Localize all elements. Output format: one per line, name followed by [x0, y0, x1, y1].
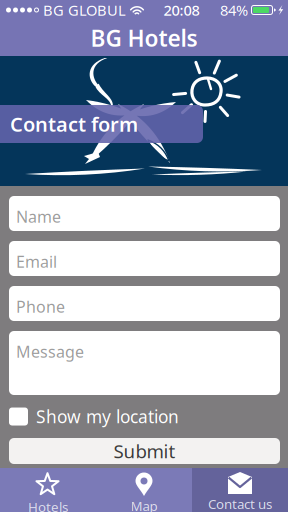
staticText: 84% — [220, 0, 248, 20]
button[interactable]: Hotels — [0, 468, 96, 512]
staticText: Phone — [16, 296, 65, 317]
staticText: Contact us — [208, 495, 272, 512]
staticText: Name — [16, 206, 61, 227]
staticText: Submit — [113, 439, 175, 463]
button[interactable]: Email — [9, 241, 280, 276]
staticText: BG Hotels — [90, 23, 197, 53]
staticText: Show my location — [36, 405, 179, 428]
button[interactable] — [9, 407, 28, 425]
staticText: BG GLOBUL — [43, 0, 126, 20]
staticText: Hotels — [28, 498, 68, 512]
button[interactable]: Message — [9, 331, 280, 395]
staticText: Email — [16, 251, 57, 272]
button[interactable]: Submit — [9, 438, 280, 464]
button[interactable]: Phone — [9, 286, 280, 321]
button[interactable]: Name — [9, 196, 280, 231]
staticText: Map — [130, 497, 157, 512]
staticText: 20:08 — [163, 0, 199, 20]
button[interactable]: Map — [96, 468, 192, 512]
staticText: Contact form — [10, 111, 138, 137]
staticText: Message — [16, 341, 84, 362]
button[interactable]: Contact us — [192, 468, 288, 512]
